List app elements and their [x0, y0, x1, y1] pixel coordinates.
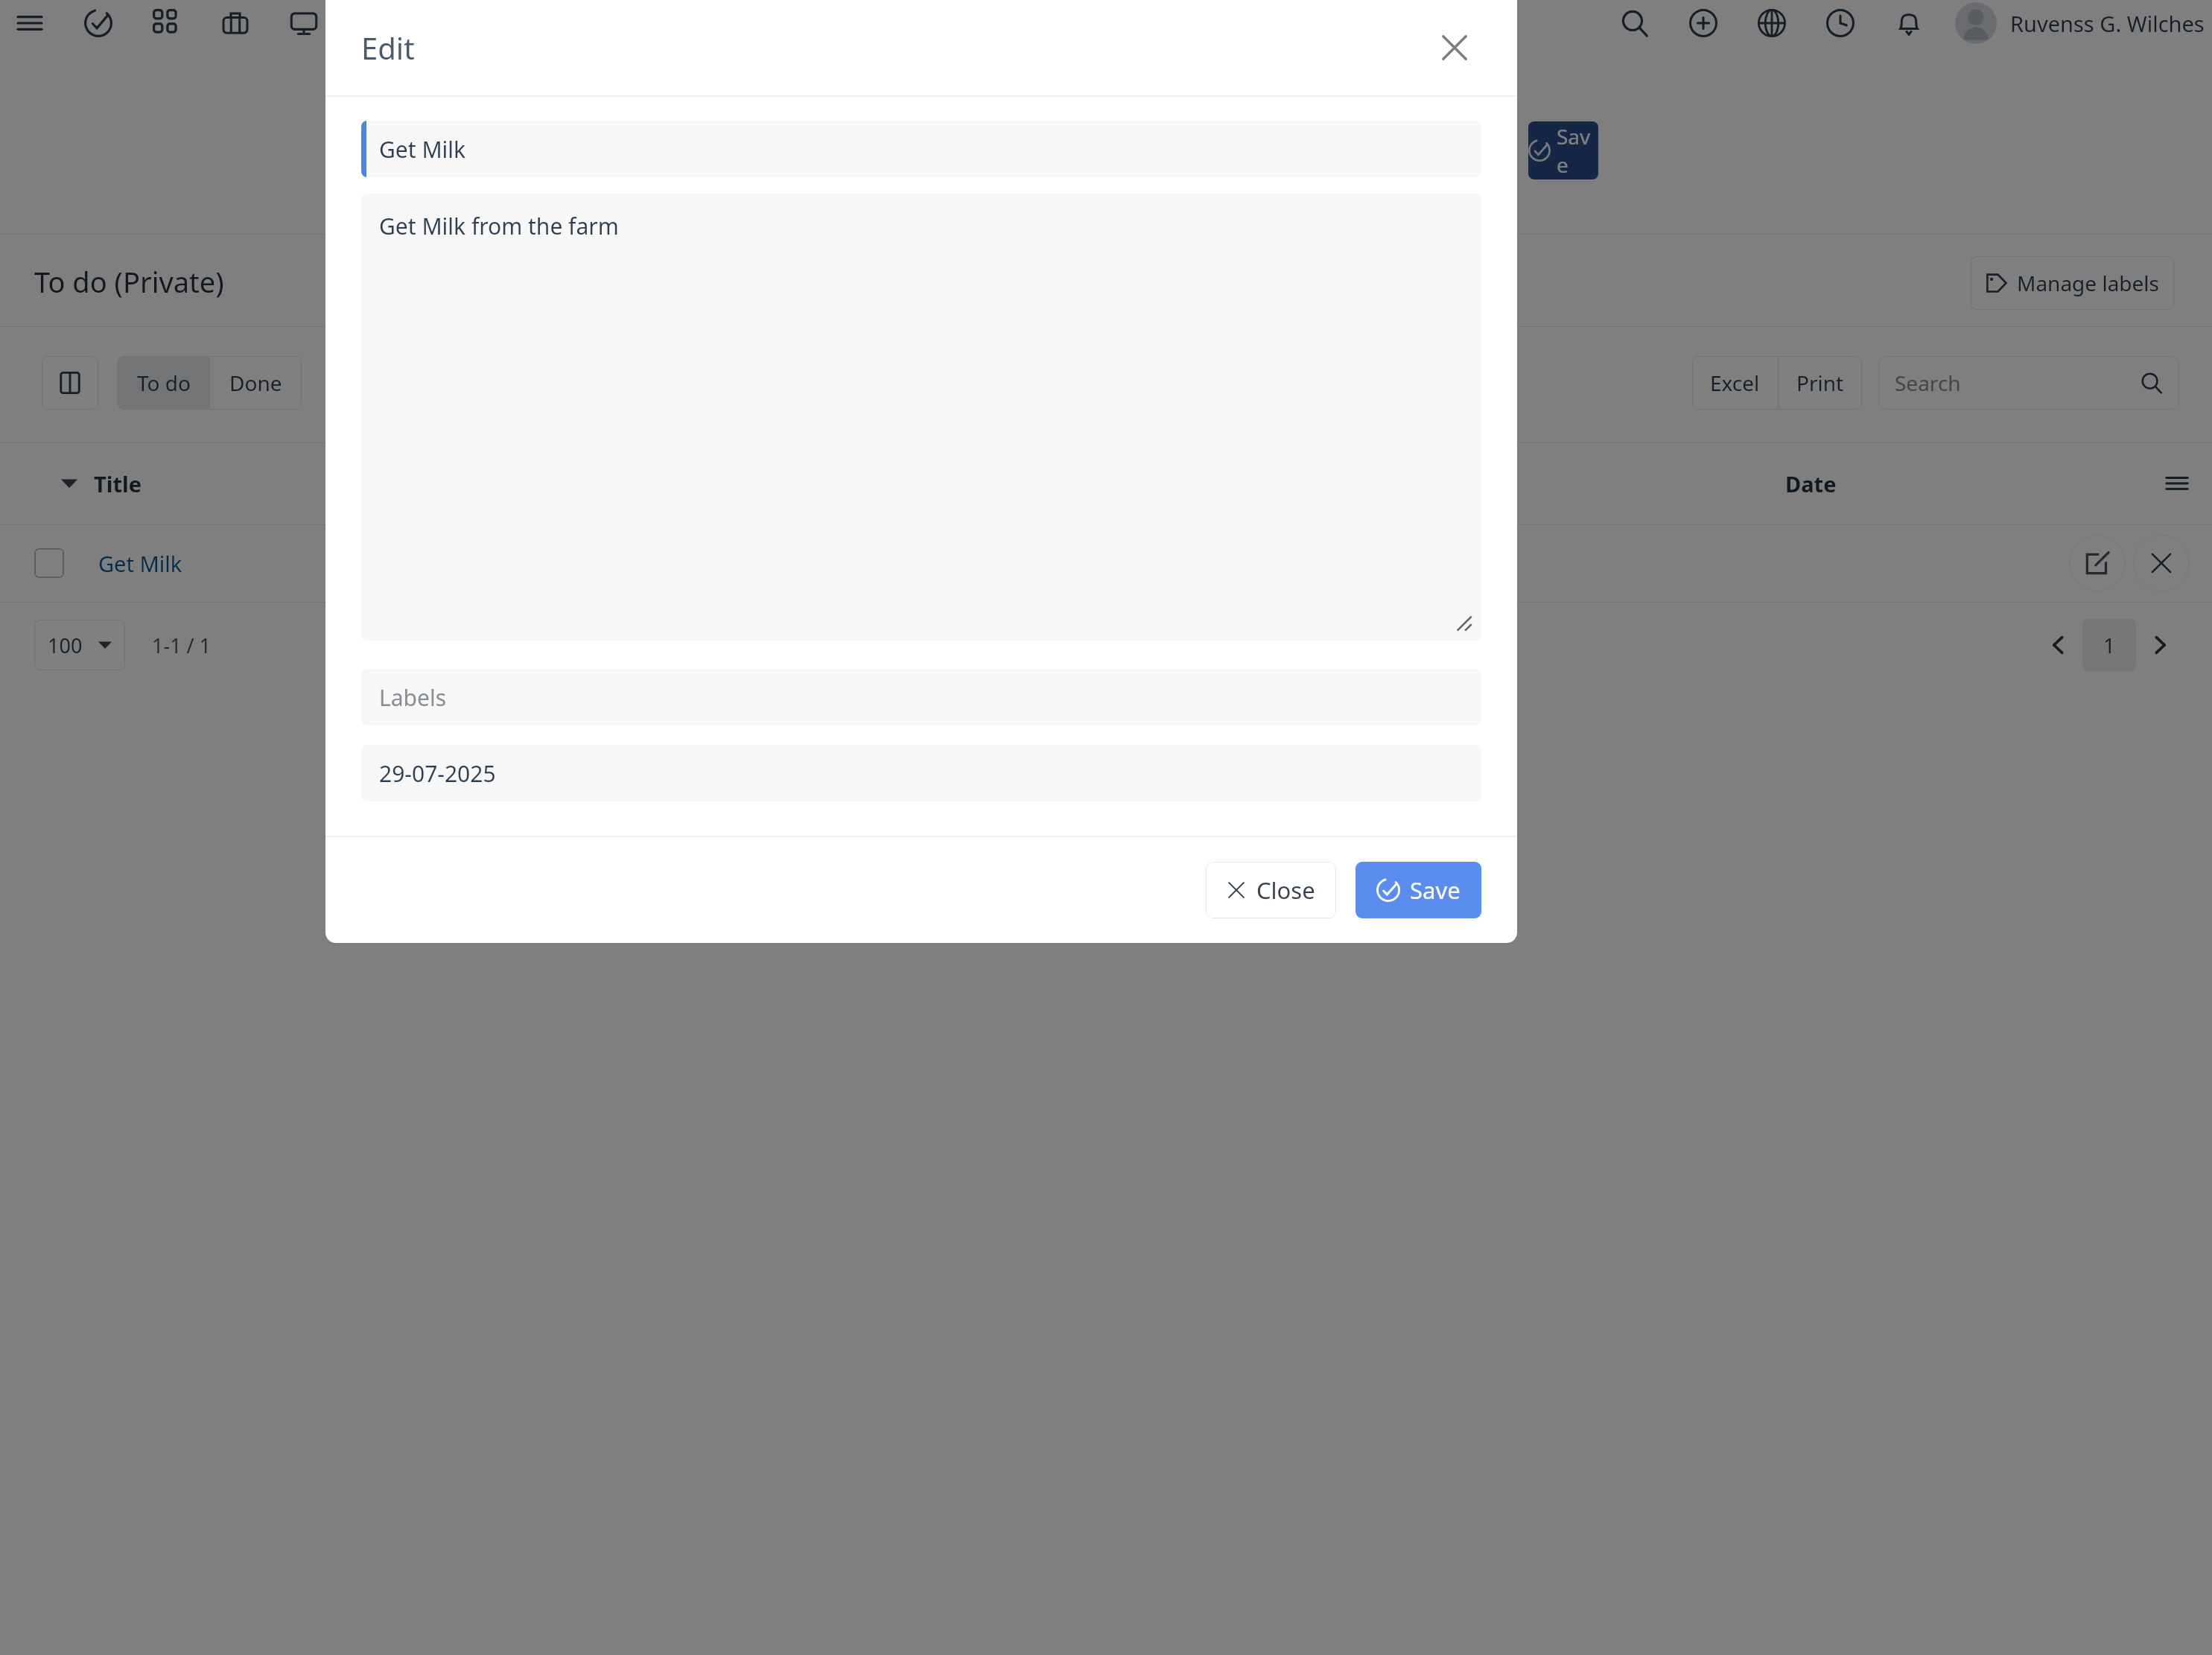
- staticText: Edit: [361, 28, 415, 68]
- staticText: Excel: [1710, 369, 1760, 397]
- staticText: 100: [48, 632, 83, 659]
- button[interactable]: 29-07-2025: [361, 745, 1481, 801]
- button[interactable]: Save: [1356, 862, 1481, 918]
- button[interactable]: 1: [2082, 619, 2136, 671]
- staticText: Save: [1557, 122, 1598, 179]
- staticText: Labels: [379, 682, 447, 713]
- staticText: Title: [94, 469, 142, 498]
- button[interactable]: Account: [1955, 2, 1997, 44]
- button[interactable]: Close: [1206, 862, 1336, 918]
- staticText: Search: [1895, 369, 1961, 397]
- staticText: Get Milk: [379, 134, 466, 165]
- button[interactable]: 100: [34, 620, 125, 670]
- staticText: 29-07-2025: [379, 758, 496, 789]
- staticText: Get Milk: [98, 549, 182, 578]
- staticText: To do: [137, 369, 191, 397]
- staticText: Done: [229, 369, 282, 397]
- button[interactable]: Labels: [361, 669, 1481, 725]
- button[interactable]: Previous page: [2033, 620, 2082, 670]
- staticText: Ruvenss G. Wilches: [2010, 9, 2205, 38]
- button[interactable]: To do: [118, 356, 210, 410]
- button[interactable]: Done: [210, 356, 302, 410]
- button[interactable]: Menu: [10, 4, 49, 42]
- button[interactable]: Save: [1528, 121, 1598, 180]
- staticText: Manage labels: [2017, 269, 2159, 297]
- button[interactable]: Notifications: [1890, 4, 1928, 42]
- staticText: Save: [1410, 874, 1461, 906]
- button[interactable]: Briefcase: [216, 4, 255, 42]
- button[interactable]: Display: [285, 4, 323, 42]
- button[interactable]: Close dialog: [1431, 24, 1478, 72]
- staticText: To do (Private): [34, 262, 224, 301]
- staticText: 1: [2103, 631, 2116, 659]
- button[interactable]: Print: [1779, 356, 1862, 410]
- button[interactable]: Search: [1615, 4, 1654, 42]
- button[interactable]: Get Milk from the farm: [361, 194, 1481, 641]
- button[interactable]: Search: [1878, 356, 2179, 410]
- button[interactable]: History: [1821, 4, 1860, 42]
- staticText: Date: [1785, 469, 1837, 498]
- staticText: Get Milk from the farm: [379, 211, 619, 241]
- button[interactable]: Edit: [2069, 535, 2126, 591]
- staticText: 1-1 / 1: [152, 632, 212, 659]
- button[interactable]: Select row: [34, 548, 64, 578]
- button[interactable]: Delete: [2133, 535, 2190, 591]
- button[interactable]: Manage labels: [1971, 256, 2174, 310]
- button[interactable]: Toggle panel: [42, 356, 98, 410]
- button[interactable]: Language: [1752, 4, 1791, 42]
- button[interactable]: Apps: [147, 4, 186, 42]
- button[interactable]: Next page: [2136, 620, 2185, 670]
- staticText: Close: [1256, 874, 1315, 906]
- button[interactable]: Add: [1684, 4, 1723, 42]
- button[interactable]: Excel: [1692, 356, 1778, 410]
- button[interactable]: Tasks: [79, 4, 118, 42]
- button[interactable]: Select row: [0, 524, 2212, 602]
- staticText: Print: [1796, 369, 1844, 397]
- button[interactable]: Get Milk: [361, 121, 1481, 177]
